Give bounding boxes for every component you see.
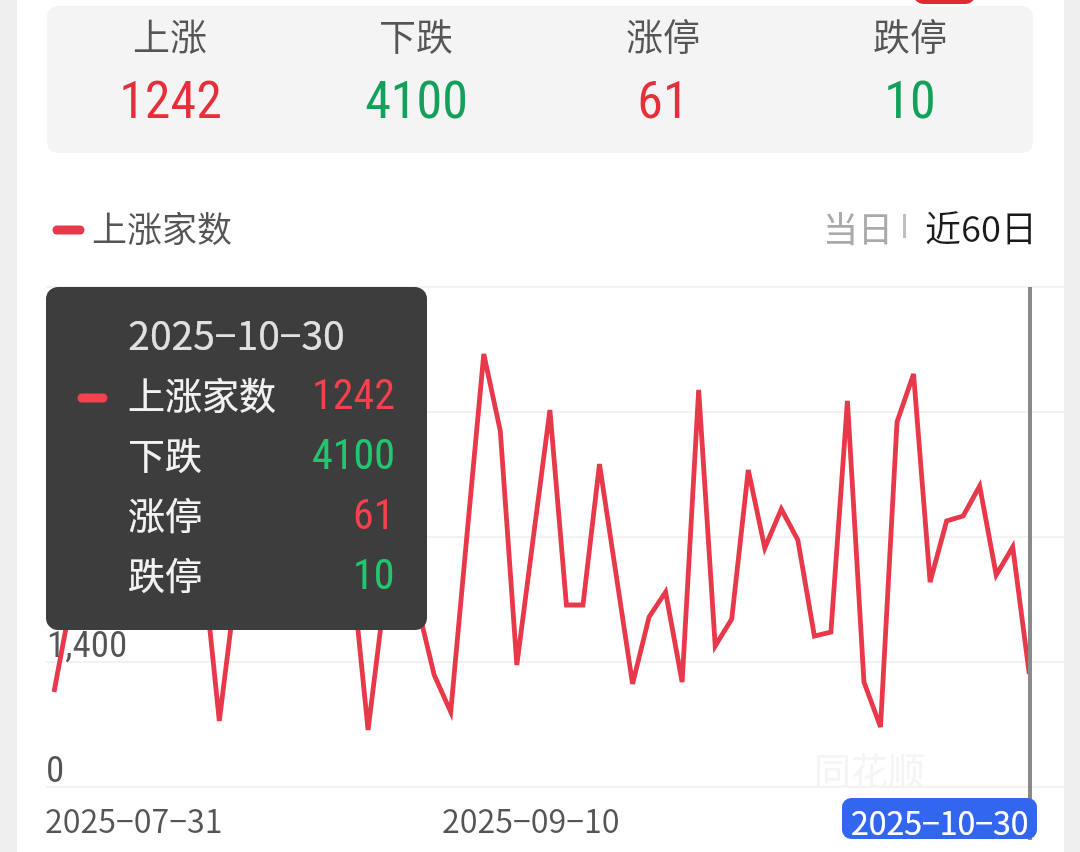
staticText: 10 [353, 550, 395, 599]
staticText: 上涨家数 [92, 201, 233, 252]
button[interactable]: Selected tab indicator [914, 0, 975, 4]
staticText: 1242 [312, 370, 395, 419]
staticText: 4100 [312, 430, 395, 479]
staticText: 2025−09−10 [442, 796, 620, 842]
button[interactable]: 2025−10−30 [842, 798, 1037, 839]
button[interactable]: 上涨 [47, 6, 293, 131]
staticText: 同花顺 [814, 742, 925, 796]
staticText: 61 [353, 490, 395, 539]
staticText: 下跌 [379, 8, 453, 62]
staticText: 涨停 [128, 487, 202, 541]
staticText: 跌停 [873, 8, 947, 62]
button[interactable]: 当日 [823, 201, 894, 252]
staticText: 1242 [119, 70, 222, 131]
button[interactable]: 近60日 [925, 200, 1037, 252]
staticText: 当日 [823, 201, 894, 252]
button[interactable]: 涨停 [539, 6, 786, 131]
staticText: 跌停 [128, 547, 202, 601]
staticText: 1,400 [47, 623, 128, 666]
staticText: 上涨 [133, 8, 207, 62]
staticText: 10 [884, 70, 936, 131]
button[interactable]: 下跌 [293, 6, 539, 131]
staticText: 0 [46, 748, 65, 791]
staticText: 下跌 [128, 427, 202, 481]
staticText: 4100 [365, 70, 468, 131]
staticText: 近60日 [925, 200, 1037, 252]
staticText: 2025−07−31 [45, 796, 223, 842]
button[interactable]: 跌停 [786, 6, 1033, 131]
staticText: 上涨家数 [128, 367, 276, 421]
staticText: 2025−10−30 [851, 798, 1029, 839]
staticText: 61 [637, 70, 689, 131]
staticText: 2025−10−30 [46, 305, 427, 361]
staticText: 涨停 [626, 8, 700, 62]
